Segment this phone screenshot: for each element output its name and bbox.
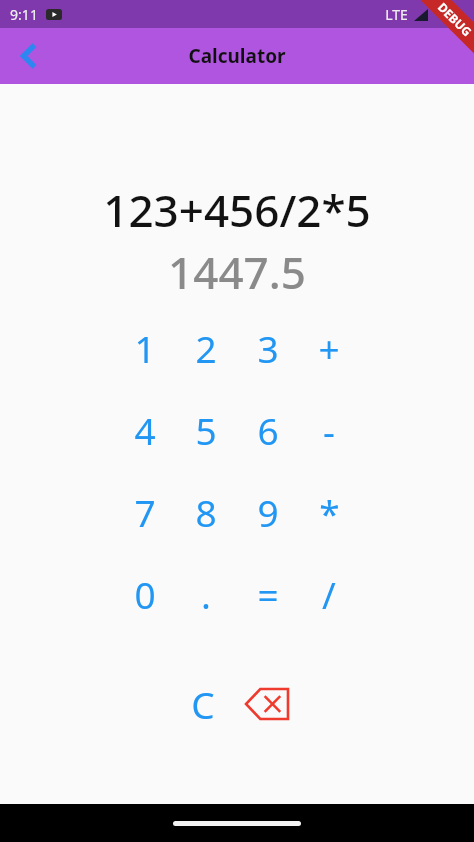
button[interactable]: . bbox=[182, 566, 230, 622]
staticText: 0 bbox=[134, 569, 156, 619]
button[interactable]: 9 bbox=[244, 484, 292, 540]
button[interactable]: 8 bbox=[182, 484, 230, 540]
button[interactable]: * bbox=[305, 484, 353, 540]
staticText: 123+456/2*5 bbox=[103, 180, 371, 240]
staticText: LTE bbox=[385, 5, 408, 24]
button[interactable]: 6 bbox=[244, 402, 292, 458]
staticText: = bbox=[257, 569, 279, 619]
staticText: 2 bbox=[195, 323, 217, 373]
staticText: * bbox=[319, 487, 340, 537]
staticText: 9:11 bbox=[10, 5, 38, 24]
button[interactable]: 1 bbox=[121, 320, 169, 376]
staticText: . bbox=[201, 569, 211, 619]
button[interactable]: + bbox=[305, 320, 353, 376]
button[interactable]: 0 bbox=[121, 566, 169, 622]
staticText: 4 bbox=[134, 405, 156, 455]
button[interactable]: Back bbox=[6, 33, 52, 79]
button[interactable]: C bbox=[179, 676, 227, 732]
button[interactable]: 2 bbox=[182, 320, 230, 376]
staticText: 5 bbox=[195, 405, 217, 455]
button[interactable]: 7 bbox=[121, 484, 169, 540]
staticText: 1447.5 bbox=[168, 242, 306, 302]
staticText: 9 bbox=[257, 487, 279, 537]
staticText: + bbox=[318, 323, 340, 373]
staticText: 3 bbox=[257, 323, 279, 373]
button[interactable]: 4 bbox=[121, 402, 169, 458]
staticText: 7 bbox=[134, 487, 156, 537]
staticText: - bbox=[323, 405, 335, 455]
staticText: DEBUG bbox=[434, 0, 474, 39]
button[interactable]: 5 bbox=[182, 402, 230, 458]
staticText: 8 bbox=[195, 487, 217, 537]
staticText: 6 bbox=[257, 405, 279, 455]
button[interactable]: = bbox=[244, 566, 292, 622]
button[interactable]: - bbox=[305, 402, 353, 458]
staticText: 1 bbox=[134, 323, 156, 373]
button[interactable]: / bbox=[305, 566, 353, 622]
button[interactable]: Backspace bbox=[243, 676, 291, 732]
staticText: Calculator bbox=[188, 43, 286, 69]
staticText: / bbox=[322, 569, 336, 619]
staticText: C bbox=[191, 679, 215, 729]
button[interactable]: 3 bbox=[244, 320, 292, 376]
